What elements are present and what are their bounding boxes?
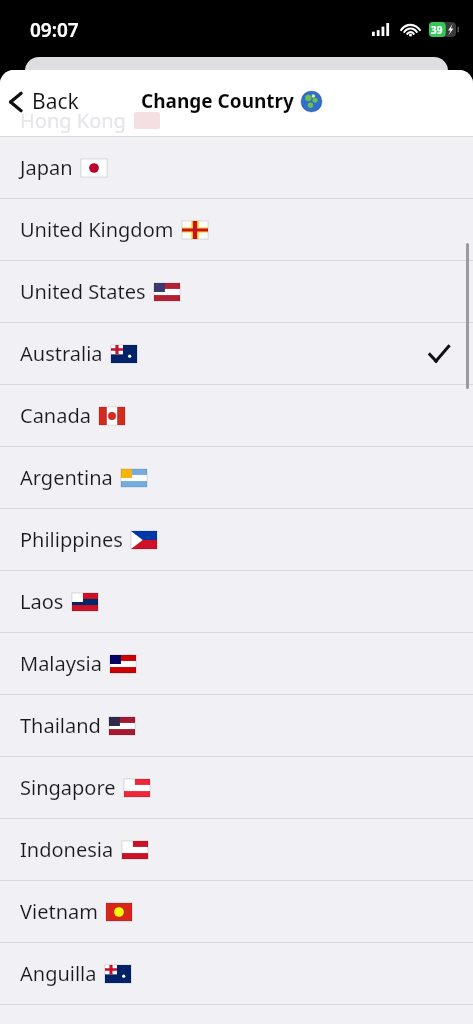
- button[interactable]: Australia: [0, 323, 473, 384]
- staticText: Australia: [20, 340, 103, 367]
- button[interactable]: United Kingdom: [0, 199, 473, 260]
- staticText: 39: [431, 23, 443, 37]
- button[interactable]: Vietnam: [0, 881, 473, 942]
- staticText: Japan: [20, 154, 73, 181]
- button[interactable]: Japan: [0, 137, 473, 198]
- staticText: Indonesia: [20, 836, 114, 863]
- button[interactable]: Anguilla: [0, 943, 473, 1004]
- button[interactable]: Laos: [0, 571, 473, 632]
- staticText: Change Country: [141, 88, 294, 114]
- staticText: Back: [32, 87, 79, 116]
- staticText: Argentina: [20, 464, 113, 491]
- staticText: Thailand: [20, 712, 101, 739]
- button[interactable]: United States: [0, 261, 473, 322]
- staticText: United Kingdom: [20, 216, 174, 243]
- other: Selected: [427, 342, 451, 366]
- staticText: Anguilla: [20, 960, 97, 987]
- button[interactable]: Canada: [0, 385, 473, 446]
- staticText: Canada: [20, 402, 91, 429]
- button[interactable]: Back: [0, 83, 89, 120]
- button[interactable]: Malaysia: [0, 633, 473, 694]
- staticText: United States: [20, 278, 146, 305]
- staticText: Hong Kong: [20, 107, 126, 134]
- button[interactable]: Singapore: [0, 757, 473, 818]
- staticText: Philippines: [20, 526, 123, 553]
- button[interactable]: Thailand: [0, 695, 473, 756]
- button[interactable]: Indonesia: [0, 819, 473, 880]
- staticText: Laos: [20, 588, 64, 615]
- staticText: Malaysia: [20, 650, 102, 677]
- button[interactable]: Argentina: [0, 447, 473, 508]
- button[interactable]: Philippines: [0, 509, 473, 570]
- staticText: Singapore: [20, 774, 116, 801]
- staticText: 09:07: [30, 17, 79, 43]
- staticText: Vietnam: [20, 898, 98, 925]
